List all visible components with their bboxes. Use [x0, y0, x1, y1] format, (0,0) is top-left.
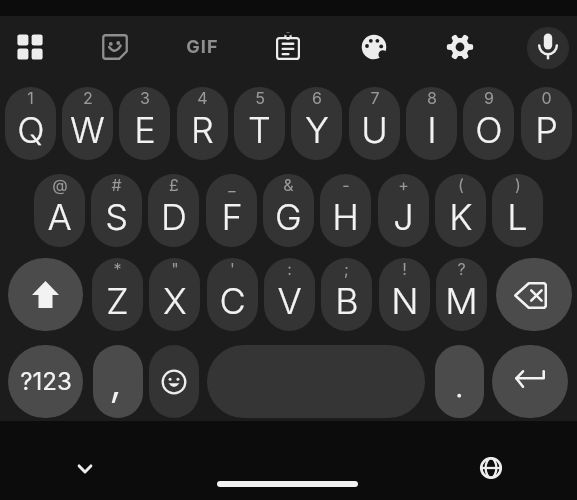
staticText: 5 — [255, 88, 265, 107]
button[interactable]: Enter — [492, 345, 568, 418]
staticText: @ — [52, 175, 68, 194]
button[interactable]: " — [149, 258, 200, 331]
button[interactable]: 7 — [349, 87, 400, 160]
staticText: £ — [169, 175, 179, 194]
button[interactable]: 0 — [521, 87, 572, 160]
button[interactable]: Change language — [469, 446, 513, 490]
staticText: 0 — [541, 88, 552, 107]
staticText: P — [535, 108, 558, 152]
button[interactable]: Settings — [436, 23, 484, 71]
staticText: 9 — [484, 88, 494, 107]
staticText: W — [70, 108, 105, 152]
button[interactable]: ?123 — [8, 345, 83, 418]
staticText: ( — [458, 175, 464, 194]
staticText: GIF — [186, 36, 219, 58]
staticText: 7 — [370, 88, 380, 107]
staticText: O — [475, 108, 503, 152]
staticText: + — [398, 175, 409, 194]
staticText: 1 — [27, 88, 34, 107]
staticText: _ — [228, 175, 236, 194]
staticText: G — [275, 195, 302, 239]
staticText: M — [445, 279, 478, 323]
staticText: ! — [402, 259, 407, 278]
button[interactable]: 3 — [119, 87, 170, 160]
staticText: E — [134, 108, 156, 152]
staticText: 2 — [83, 88, 93, 107]
button[interactable]: ; — [321, 258, 372, 331]
staticText: C — [219, 279, 246, 323]
staticText: N — [391, 279, 419, 323]
button[interactable]: 8 — [406, 87, 457, 160]
staticText: Z — [106, 279, 129, 323]
button[interactable]: Stickers — [91, 23, 139, 71]
button[interactable]: Hide keyboard — [63, 447, 107, 491]
button[interactable]: 1 — [5, 87, 56, 160]
staticText: " — [171, 259, 179, 278]
staticText: ?123 — [20, 367, 72, 396]
button[interactable]: Emoji — [149, 345, 199, 418]
button[interactable]: _ — [206, 174, 257, 247]
button[interactable]: ) — [492, 174, 543, 247]
staticText: ; — [344, 259, 349, 278]
staticText: L — [507, 195, 528, 239]
staticText: Q — [17, 108, 45, 152]
button[interactable]: Period — [435, 345, 484, 418]
button[interactable]: Apps — [6, 23, 54, 71]
button[interactable]: £ — [148, 174, 199, 247]
staticText: & — [283, 175, 294, 194]
button[interactable]: @ — [34, 174, 85, 247]
button[interactable]: : — [264, 258, 315, 331]
button[interactable]: ? — [436, 258, 487, 331]
staticText: 4 — [197, 88, 208, 107]
staticText: F — [221, 195, 243, 239]
staticText: 8 — [427, 88, 437, 107]
button[interactable]: 5 — [234, 87, 285, 160]
button[interactable]: Voice input — [527, 27, 569, 69]
button[interactable]: ' — [207, 258, 258, 331]
button[interactable]: & — [263, 174, 314, 247]
button[interactable]: 9 — [463, 87, 514, 160]
staticText: U — [361, 108, 388, 152]
button[interactable]: Comma — [93, 345, 143, 418]
staticText: Y — [305, 108, 329, 152]
staticText: D — [161, 195, 187, 239]
staticText: S — [105, 195, 128, 239]
staticText: J — [393, 195, 414, 239]
staticText: 3 — [140, 88, 150, 107]
button[interactable]: Themes — [350, 23, 398, 71]
staticText: T — [248, 108, 271, 152]
staticText: ) — [515, 175, 521, 194]
button[interactable]: # — [91, 174, 142, 247]
button[interactable]: 6 — [291, 87, 342, 160]
button[interactable]: * — [92, 258, 143, 331]
staticText: ? — [457, 259, 466, 278]
button[interactable]: Space — [207, 345, 425, 418]
button[interactable]: 2 — [62, 87, 113, 160]
staticText: A — [47, 195, 72, 239]
staticText: R — [191, 108, 214, 152]
button[interactable]: - — [320, 174, 371, 247]
button[interactable]: GIF — [172, 23, 232, 71]
staticText: ' — [230, 259, 235, 278]
button[interactable]: ! — [379, 258, 430, 331]
button[interactable]: Clipboard — [264, 23, 312, 71]
staticText: : — [287, 259, 292, 278]
staticText: V — [277, 279, 302, 323]
staticText: B — [335, 279, 359, 323]
staticText: # — [111, 175, 122, 194]
staticText: * — [113, 259, 122, 278]
button[interactable]: Backspace — [496, 258, 572, 331]
button[interactable]: ( — [435, 174, 486, 247]
staticText: 6 — [312, 88, 322, 107]
button[interactable]: 4 — [177, 87, 228, 160]
button[interactable]: + — [378, 174, 429, 247]
staticText: X — [163, 279, 187, 323]
staticText: I — [427, 108, 437, 152]
staticText: - — [342, 175, 350, 194]
staticText: K — [449, 195, 473, 239]
button[interactable]: Shift — [8, 258, 83, 331]
staticText: H — [332, 195, 359, 239]
